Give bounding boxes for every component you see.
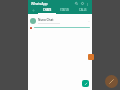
staticText: CALLS bbox=[79, 8, 87, 12]
button[interactable]: New chat bbox=[82, 80, 89, 87]
staticText: WhatsApp bbox=[31, 1, 48, 6]
staticText: STATUS bbox=[60, 8, 70, 12]
button[interactable]: Pointer bbox=[88, 54, 94, 60]
button[interactable]: Camera bbox=[28, 7, 38, 13]
button[interactable]: Search bbox=[74, 1, 79, 6]
staticText: CHATS bbox=[43, 8, 52, 12]
button[interactable] bbox=[28, 25, 92, 30]
button[interactable]: Floating overlay bbox=[105, 75, 118, 88]
staticText: Nuvo Chat bbox=[38, 18, 54, 22]
staticText: … bbox=[88, 19, 90, 22]
button[interactable]: Options bbox=[80, 1, 85, 6]
button[interactable]: STATUS bbox=[56, 7, 74, 13]
button[interactable]: Nuvo Chat bbox=[28, 16, 92, 25]
button[interactable]: More options bbox=[85, 2, 89, 6]
button[interactable]: CHATS bbox=[38, 7, 56, 13]
button[interactable]: CALLS bbox=[74, 7, 92, 13]
